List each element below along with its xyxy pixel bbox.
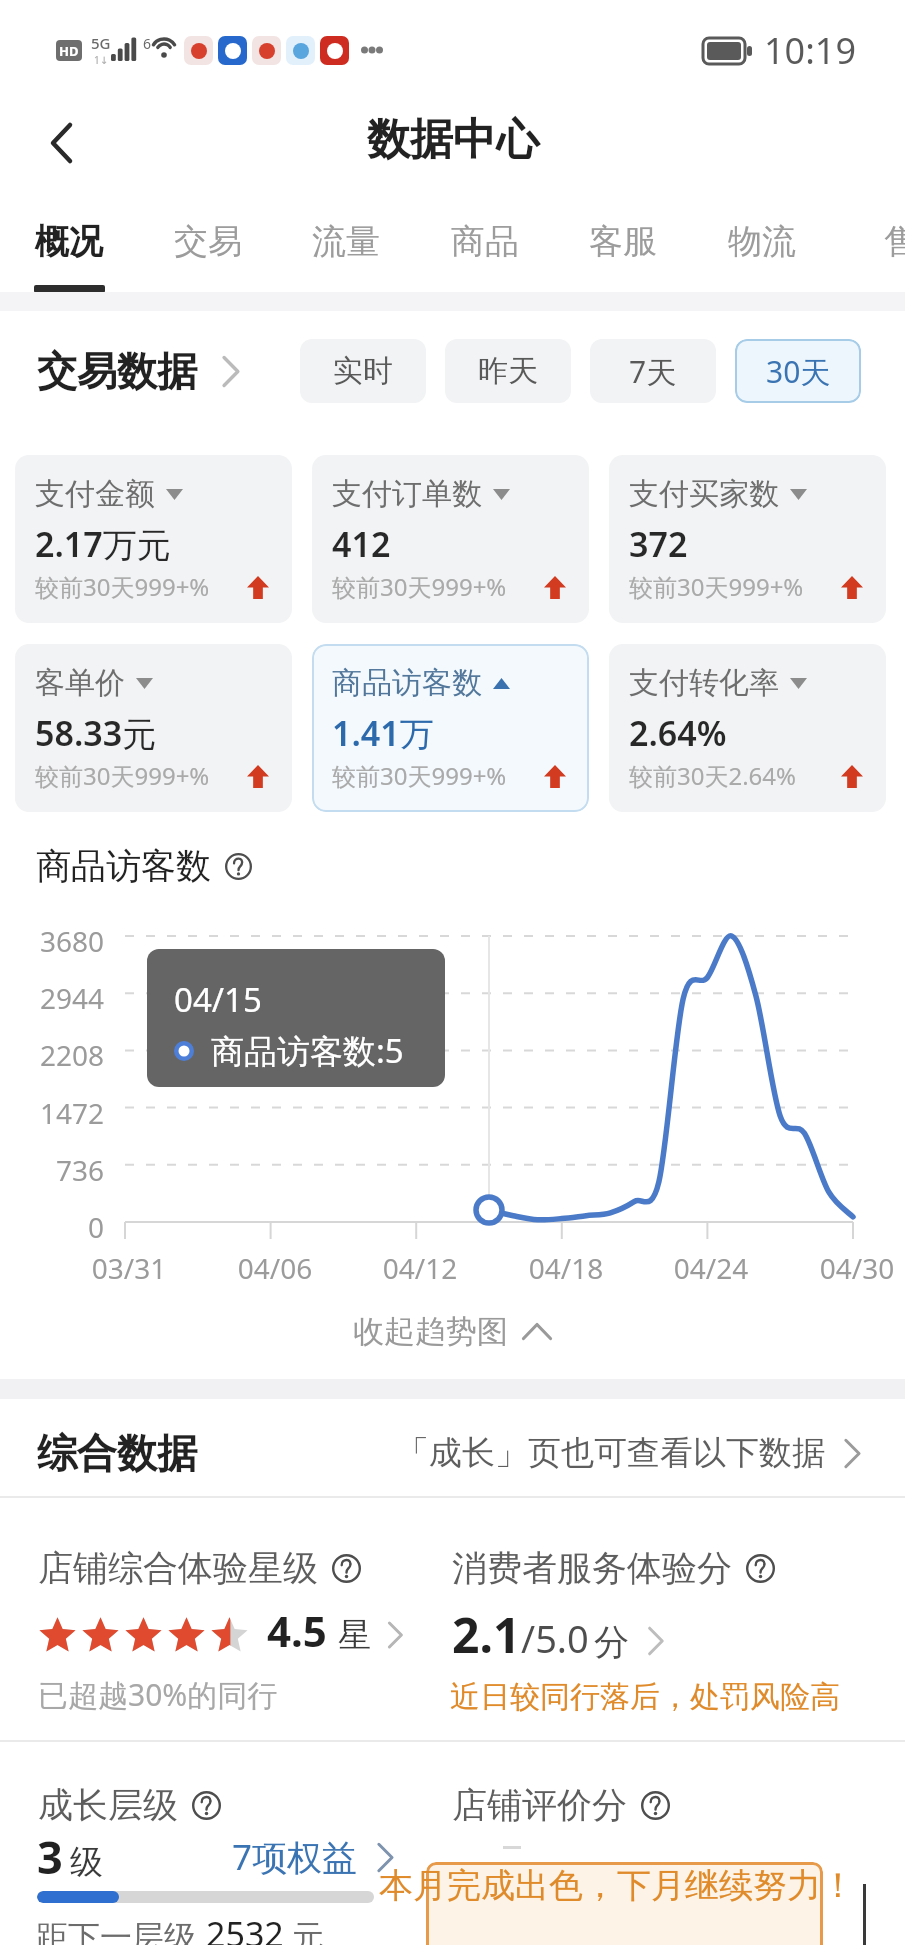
staticText: 较前30天999+% [332, 570, 507, 603]
staticText: 实时 [333, 352, 393, 390]
button[interactable]: 客服 [554, 186, 692, 292]
button[interactable]: 2.1 [452, 1602, 666, 1667]
button[interactable]: 商品访客数 [312, 644, 589, 812]
staticText: 成长层级 [38, 1783, 178, 1827]
button[interactable]: 7天 [590, 339, 716, 403]
staticText: 04/18 [506, 1249, 626, 1287]
staticText: 综合数据 [37, 1428, 197, 1478]
staticText: 「成长」页也可查看以下数据 [396, 1432, 825, 1474]
staticText: 736 [0, 1151, 104, 1189]
button[interactable]: 支付买家数 [609, 455, 886, 623]
staticText: 3 [37, 1826, 63, 1887]
staticText: 7项权益 [232, 1833, 358, 1881]
staticText: 较前30天999+% [629, 570, 804, 603]
staticText: 支付买家数 [629, 475, 779, 513]
button[interactable]: 昨天 [445, 339, 571, 403]
staticText: 1.41万 [332, 710, 434, 756]
button[interactable]: 物流 [693, 186, 831, 292]
staticText: 商品访客数 [36, 844, 211, 888]
staticText: 较前30天999+% [35, 570, 210, 603]
staticText: 物流 [728, 220, 796, 263]
button[interactable]: 概况 [0, 186, 138, 292]
staticText: 03/31 [69, 1249, 189, 1287]
staticText: 店铺评价分 [452, 1783, 627, 1827]
button[interactable]: 支付转化率 [609, 644, 886, 812]
staticText: 2.17万元 [35, 521, 171, 567]
staticText: 分 [594, 1620, 629, 1664]
staticText: 本月完成出色，下月继续努力！ [379, 1864, 855, 1907]
staticText: 372 [629, 521, 688, 567]
staticText: 较前30天2.64% [629, 759, 797, 792]
staticText: 商品 [451, 220, 519, 263]
staticText: 消费者服务体验分 [452, 1546, 732, 1590]
staticText: 已超越30%的同行 [38, 1674, 278, 1715]
staticText: 商品访客数 [332, 664, 482, 702]
staticText: 5G [91, 33, 111, 53]
staticText: 04/30 [797, 1249, 905, 1287]
staticText: 距下一层级 [36, 1917, 196, 1945]
staticText: 2.1 [452, 1602, 521, 1667]
staticText: 较前30天999+% [35, 759, 210, 792]
staticText: 概况 [35, 220, 103, 263]
staticText: 元 [292, 1917, 324, 1945]
staticText: 店铺综合体验星级 [38, 1546, 318, 1590]
staticText: 支付订单数 [332, 475, 482, 513]
staticText: 04/06 [215, 1249, 335, 1287]
staticText: 2532 [206, 1911, 284, 1945]
staticText: 2208 [0, 1036, 104, 1074]
staticText: 4.5 [267, 1602, 327, 1659]
staticText: HD [59, 42, 79, 60]
staticText: 昨天 [478, 352, 538, 390]
staticText: 支付金额 [35, 475, 155, 513]
staticText: 流量 [312, 220, 380, 263]
button[interactable]: 商品 [416, 186, 554, 292]
button[interactable]: 收起趋势图 [0, 1301, 905, 1361]
staticText: 售 [884, 220, 905, 263]
staticText: 数据中心 [367, 113, 539, 167]
staticText: 2944 [0, 979, 104, 1017]
staticText: 交易数据 [37, 346, 197, 396]
button[interactable]: 实时 [300, 339, 426, 403]
staticText: 04/24 [651, 1249, 771, 1287]
staticText: 10:19 [764, 26, 857, 75]
staticText: 收起趋势图 [353, 1312, 508, 1351]
button[interactable]: 7项权益 [232, 1833, 396, 1881]
staticText: 412 [332, 521, 391, 567]
staticText: 客服 [589, 220, 657, 263]
staticText: /5.0 [521, 1612, 589, 1664]
staticText: 2.64% [629, 710, 727, 756]
button[interactable]: 售 [832, 186, 905, 292]
button[interactable]: 支付订单数 [312, 455, 589, 623]
staticText: 7天 [629, 351, 677, 392]
staticText: 近日较同行落后，处罚风险高 [450, 1678, 840, 1716]
staticText: 1↓ [94, 53, 109, 67]
button[interactable]: 支付金额 [15, 455, 292, 623]
button[interactable]: 「成长」页也可查看以下数据 [396, 1432, 863, 1474]
staticText: 58.33元 [35, 710, 157, 756]
button[interactable]: 流量 [277, 186, 415, 292]
button[interactable]: 4.5 [36, 1606, 405, 1663]
staticText: 30天 [766, 351, 831, 392]
staticText: 3680 [0, 922, 104, 960]
staticText: 0 [0, 1208, 104, 1246]
staticText: 04/15 [174, 977, 262, 1022]
button[interactable]: 30天 [735, 339, 861, 403]
button[interactable]: 交易 [139, 186, 277, 292]
staticText: 星 [338, 1614, 371, 1656]
staticText: 6 [143, 34, 152, 53]
staticText: 级 [70, 1841, 103, 1883]
button[interactable]: 客单价 [15, 644, 292, 812]
button[interactable]: 交易数据 [37, 346, 242, 396]
staticText: 04/12 [360, 1249, 480, 1287]
staticText: 商品访客数:5 [211, 1028, 404, 1073]
staticText: 较前30天999+% [332, 759, 507, 792]
button[interactable]: Back [28, 108, 98, 178]
staticText: 客单价 [35, 664, 125, 702]
staticText: 1472 [0, 1094, 104, 1132]
staticText: 交易 [174, 220, 242, 263]
staticText: 支付转化率 [629, 664, 779, 702]
